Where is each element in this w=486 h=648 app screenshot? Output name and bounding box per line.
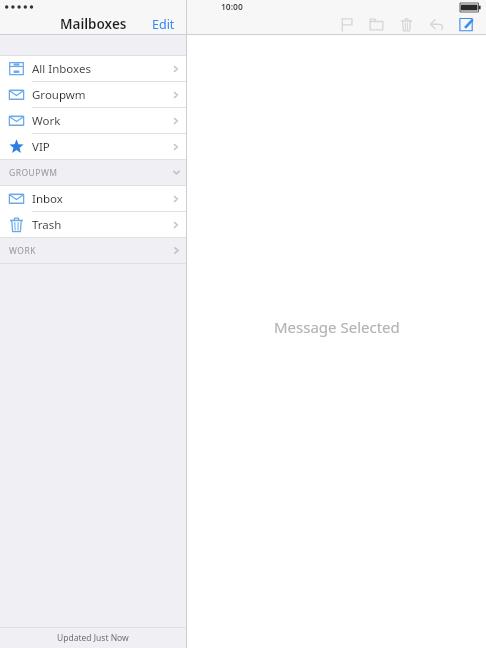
staticText: Updated Just Now: [57, 632, 129, 644]
staticText: Inbox: [32, 191, 166, 207]
staticText: Groupwm: [32, 87, 166, 103]
staticText: All Inboxes: [32, 61, 166, 77]
button[interactable]: Delete: [391, 14, 421, 34]
staticText: 10:00: [221, 1, 243, 13]
staticText: Mailboxes: [60, 15, 127, 33]
button[interactable]: Groupwm: [0, 82, 186, 107]
button[interactable]: Compose: [451, 14, 481, 34]
staticText: Trash: [32, 217, 166, 233]
staticText: Message Selected: [274, 317, 400, 337]
button[interactable]: Reply: [421, 14, 451, 34]
staticText: Edit: [152, 16, 175, 32]
button[interactable]: Trash: [0, 212, 186, 237]
staticText: GROUPWM: [9, 167, 166, 179]
button[interactable]: Flag: [331, 14, 361, 34]
button[interactable]: WORK: [0, 238, 186, 263]
staticText: Work: [32, 113, 166, 129]
staticText: VIP: [32, 139, 166, 155]
button[interactable]: Edit: [141, 14, 186, 34]
button[interactable]: VIP: [0, 134, 186, 159]
button[interactable]: Move to folder: [361, 14, 391, 34]
button[interactable]: Inbox: [0, 186, 186, 211]
button[interactable]: Work: [0, 108, 186, 133]
button[interactable]: All Inboxes: [0, 56, 186, 81]
staticText: WORK: [9, 245, 166, 257]
button[interactable]: GROUPWM: [0, 160, 186, 185]
